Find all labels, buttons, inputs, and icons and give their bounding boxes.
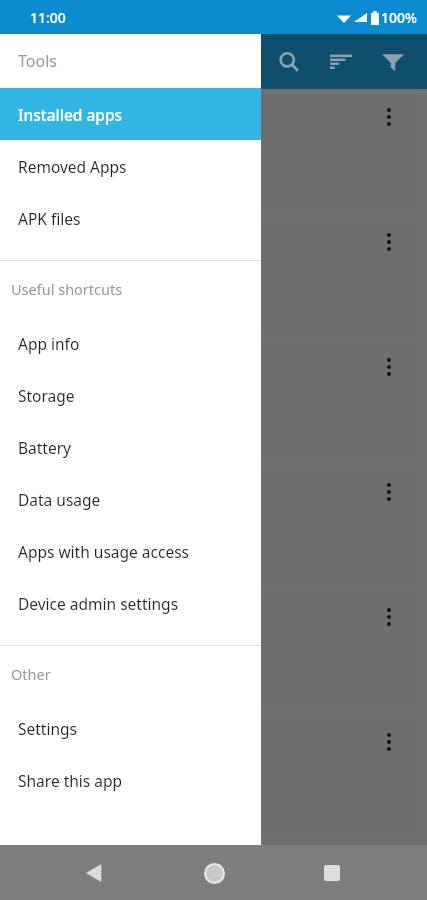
staticText: b.evopop, date xyxy=(14,382,113,401)
staticText: p size: 142 MB xyxy=(14,553,108,572)
staticText: Data usage xyxy=(18,489,101,510)
staticText: version code: xyxy=(14,155,102,174)
button[interactable]: Device admin settings xyxy=(0,577,261,629)
button[interactable]: More options xyxy=(372,225,406,259)
staticText: App info xyxy=(18,333,80,354)
button[interactable]: More options xyxy=(12,594,418,709)
staticText: , date installed: xyxy=(14,632,114,651)
button[interactable]: Data usage xyxy=(0,473,261,525)
button[interactable]: More options xyxy=(372,475,406,509)
button[interactable]: Search xyxy=(263,36,315,88)
staticText: k.fruitninjax, xyxy=(14,257,97,276)
staticText: n code: xyxy=(14,780,62,799)
staticText: n code: 37, xyxy=(14,405,86,424)
button[interactable]: Share this app xyxy=(0,754,261,806)
button[interactable]: Installed apps xyxy=(0,88,261,140)
button[interactable]: More options xyxy=(372,100,406,134)
staticText: ne, date xyxy=(14,757,68,776)
staticText: Device admin settings xyxy=(18,593,179,614)
staticText: 11:00 xyxy=(30,8,66,27)
button[interactable]: Storage xyxy=(0,369,261,421)
button[interactable]: Home xyxy=(190,849,238,897)
staticText: Installed apps xyxy=(18,104,123,125)
staticText: Storage xyxy=(18,385,75,406)
staticText: 27121, version xyxy=(14,655,110,674)
button[interactable]: More options xyxy=(372,600,406,634)
staticText: Tools xyxy=(18,50,57,72)
button[interactable]: More options xyxy=(12,469,418,584)
staticText: tion.puzzle, xyxy=(14,507,90,526)
button[interactable]: More options xyxy=(12,94,418,209)
staticText: e: 169 MB xyxy=(14,428,79,447)
button[interactable]: Settings xyxy=(0,702,261,754)
button[interactable]: Recents xyxy=(308,849,356,897)
staticText: d.badland, xyxy=(14,132,84,151)
staticText: Apps with usage access xyxy=(18,541,189,562)
button[interactable]: Apps with usage access xyxy=(0,525,261,577)
button[interactable]: More options xyxy=(12,344,418,459)
button[interactable]: Battery xyxy=(0,421,261,473)
button[interactable]: More options xyxy=(372,350,406,384)
button[interactable]: Sort xyxy=(315,36,367,88)
button[interactable]: APK files xyxy=(0,192,261,244)
button[interactable]: Filter xyxy=(367,36,419,88)
staticText: version code: xyxy=(14,280,102,299)
button[interactable]: Back xyxy=(71,849,119,897)
button[interactable]: More options xyxy=(372,725,406,759)
staticText: APK files xyxy=(18,208,81,229)
staticText: Share this app xyxy=(18,770,123,791)
staticText: 1B xyxy=(14,678,32,697)
staticText: Useful shortcuts xyxy=(11,279,123,299)
staticText: version code: xyxy=(14,530,102,549)
button[interactable]: Removed Apps xyxy=(0,140,261,192)
staticText: Removed Apps xyxy=(18,156,127,177)
button[interactable]: App info xyxy=(0,317,261,369)
button[interactable]: More options xyxy=(12,719,418,834)
staticText: Other xyxy=(11,664,51,684)
staticText: 100% xyxy=(381,8,417,27)
button[interactable]: More options xyxy=(12,219,418,334)
staticText: Settings xyxy=(18,718,77,739)
staticText: Battery xyxy=(18,437,72,458)
